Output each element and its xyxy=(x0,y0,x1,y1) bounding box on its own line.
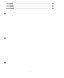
button[interactable]: Appendix, page 3 xyxy=(0,8,64,10)
button[interactable]: Getting started, page 2 xyxy=(0,5,64,7)
button[interactable]: Introduction, page 1 xyxy=(0,2,64,4)
